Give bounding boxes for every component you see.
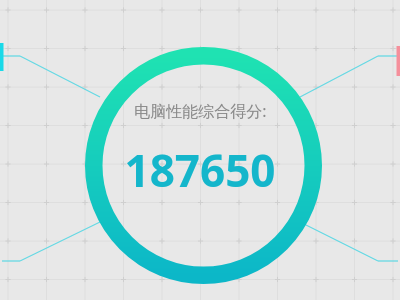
other: 电脑性能综合得分 187650: [0, 0, 400, 300]
staticText: 187650: [124, 140, 276, 200]
staticText: 电脑性能综合得分:: [134, 100, 267, 122]
